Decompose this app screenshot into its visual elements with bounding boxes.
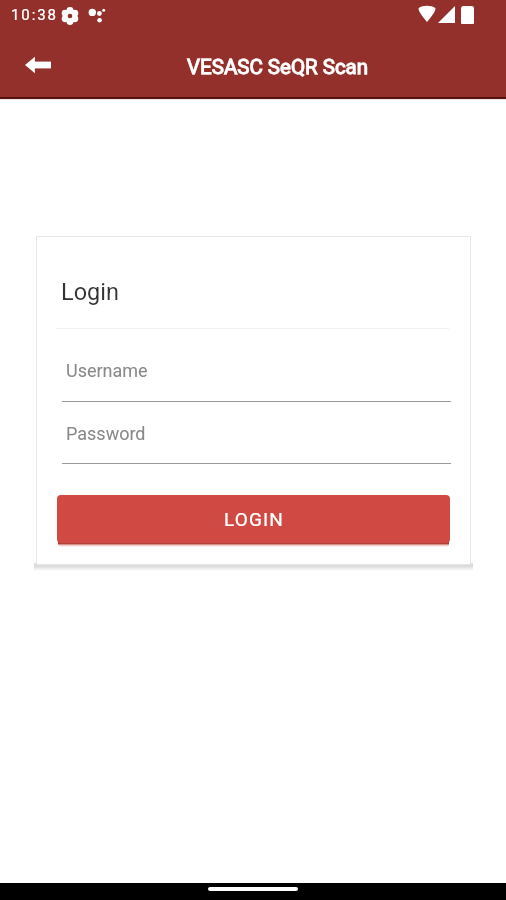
staticText: 10:38 (11, 6, 58, 24)
staticText: LOGIN (224, 508, 284, 530)
staticText: VESASC SeQR Scan (187, 55, 369, 79)
button[interactable]: LOGIN (57, 495, 450, 543)
staticText: Password (66, 423, 146, 444)
button[interactable]: Back (14, 41, 62, 89)
staticText: Login (61, 278, 119, 306)
staticText: Username (66, 360, 148, 381)
